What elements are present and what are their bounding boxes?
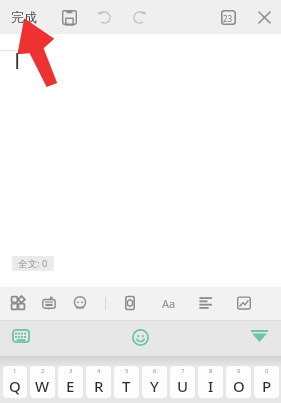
button[interactable]: 3 — [58, 366, 83, 398]
button[interactable]: 9 — [226, 366, 251, 398]
staticText: Y — [150, 376, 159, 396]
staticText: 23 — [223, 13, 233, 24]
staticText: 8 — [209, 367, 213, 375]
button[interactable]: Apps — [7, 292, 29, 314]
button[interactable]: 5 — [114, 366, 139, 398]
button[interactable]: 6 — [142, 366, 167, 398]
staticText: R — [94, 376, 104, 396]
button[interactable]: Save — [57, 5, 81, 29]
staticText: 1 — [13, 367, 17, 375]
button[interactable]: 1 — [3, 366, 27, 398]
button[interactable]: 0 — [254, 366, 279, 398]
staticText: 完成 — [11, 9, 37, 25]
button[interactable]: 完成 — [6, 0, 42, 34]
button[interactable]: Keyboard — [12, 329, 30, 343]
staticText: Q — [9, 376, 21, 396]
button[interactable]: Align — [195, 292, 217, 314]
staticText: 4 — [97, 367, 101, 375]
button[interactable]: Font size — [158, 292, 180, 314]
button[interactable]: 全文: 0 — [12, 256, 54, 271]
staticText: 7 — [181, 367, 185, 375]
button[interactable]: Undo — [92, 5, 116, 29]
staticText: 6 — [153, 367, 157, 375]
button[interactable]: Calendar — [216, 5, 240, 29]
staticText: Aa — [162, 296, 176, 311]
button[interactable]: 4 — [86, 366, 111, 398]
staticText: U — [177, 376, 189, 396]
staticText: P — [262, 376, 272, 396]
button[interactable]: 7 — [170, 366, 195, 398]
staticText: T — [122, 376, 131, 396]
button[interactable]: Hide keyboard — [251, 330, 268, 342]
button[interactable]: Emoji — [69, 292, 91, 314]
button[interactable]: Voice input — [38, 292, 60, 314]
button[interactable]: Insert image — [233, 292, 255, 314]
staticText: W — [35, 376, 50, 396]
button[interactable]: Emoji — [132, 329, 149, 346]
staticText: 全文: 0 — [18, 257, 48, 270]
button[interactable]: Close — [252, 5, 276, 29]
staticText: O — [233, 376, 245, 396]
button[interactable]: 8 — [198, 366, 223, 398]
button[interactable]: Device — [119, 292, 141, 314]
button[interactable]: Redo — [127, 5, 151, 29]
staticText: 3 — [69, 367, 73, 375]
staticText: E — [66, 376, 75, 396]
staticText: 9 — [237, 367, 241, 375]
staticText: I — [208, 376, 214, 396]
staticText: 2 — [41, 367, 45, 375]
button[interactable]: 2 — [30, 366, 55, 398]
staticText: 5 — [125, 367, 129, 375]
staticText: 0 — [265, 367, 269, 375]
